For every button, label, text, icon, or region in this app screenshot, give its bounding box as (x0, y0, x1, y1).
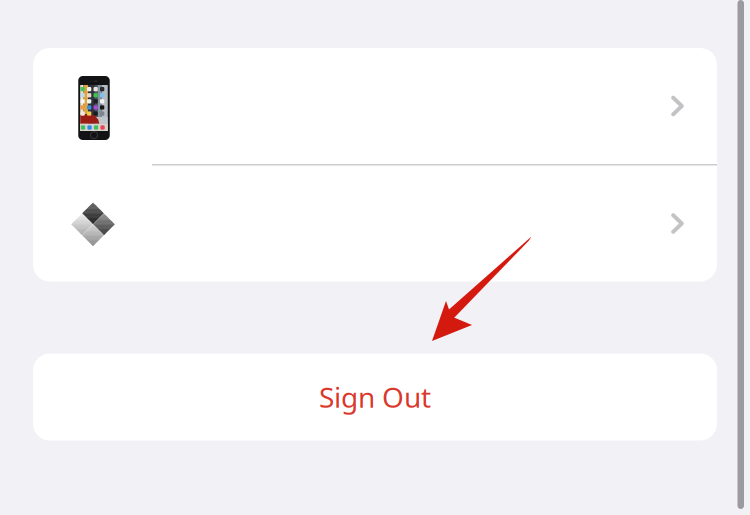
button[interactable]: iPhone (33, 48, 717, 164)
button[interactable]: Sign Out (33, 353, 717, 440)
staticText: Sign Out (319, 378, 431, 416)
button[interactable]: App (33, 165, 717, 281)
